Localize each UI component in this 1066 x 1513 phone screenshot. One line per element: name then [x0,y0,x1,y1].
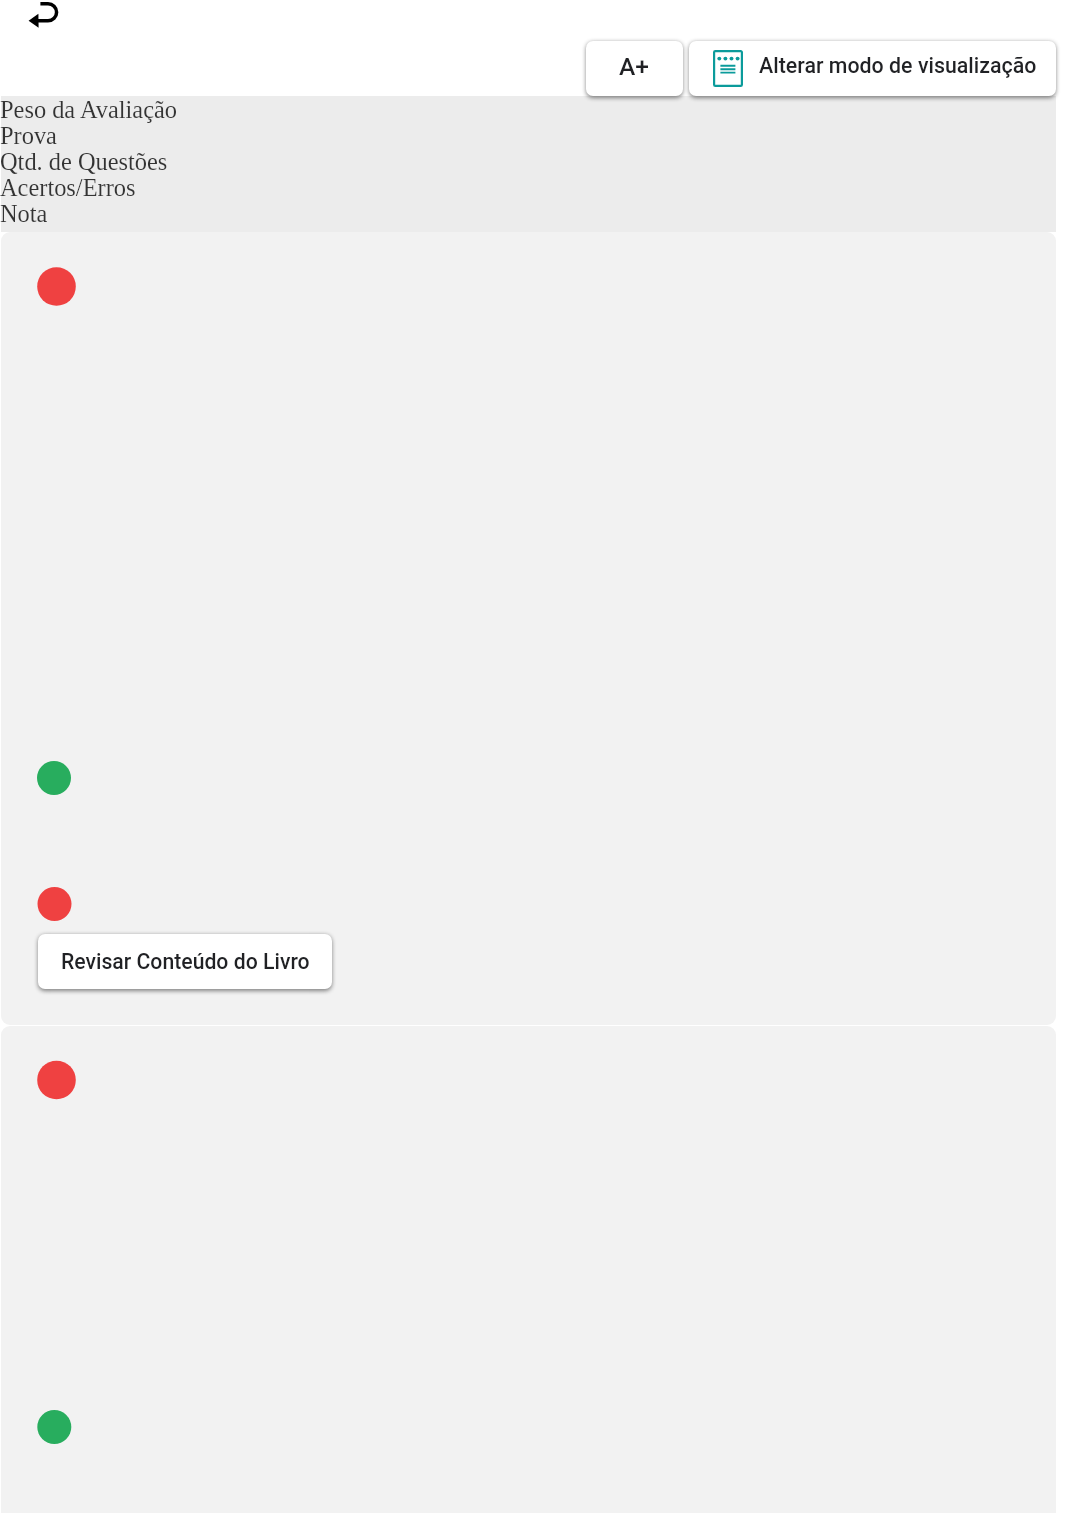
button[interactable]: Voltar [26,0,62,32]
button[interactable]: Revisar Conteúdo do Livro [38,934,332,989]
staticText: Alterar modo de visualização [759,53,1037,78]
staticText: Peso da Avaliação Prova Qtd. de Questões… [0,96,177,227]
staticText: Revisar Conteúdo do Livro [61,949,310,974]
button[interactable]: Alterar modo de visualização [689,41,1056,96]
staticText: A+ [619,52,649,81]
button[interactable]: A+ [586,41,683,96]
